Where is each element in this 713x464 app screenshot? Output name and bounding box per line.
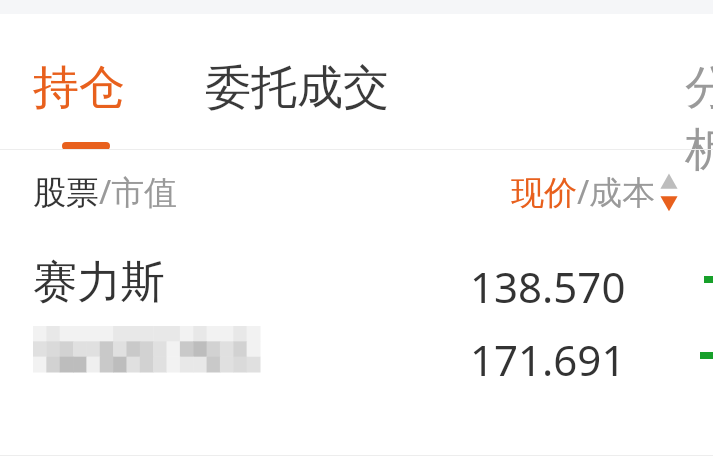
staticText: 赛力斯 — [33, 255, 165, 310]
button[interactable]: 委托成交 — [205, 14, 420, 149]
button[interactable]: 现价/成本 — [511, 169, 680, 214]
staticText: 股票/市值 — [33, 169, 178, 214]
other: Sort — [658, 171, 680, 213]
button[interactable]: 赛力斯 — [0, 233, 713, 453]
button[interactable]: 股票/市值 — [33, 169, 178, 214]
staticText: 持仓 — [33, 59, 125, 117]
button[interactable]: 分析 — [685, 14, 713, 149]
staticText: 分析 — [685, 59, 713, 179]
staticText: 现价/成本 — [511, 169, 656, 214]
staticText: 171.691 — [470, 331, 626, 388]
button[interactable]: 持仓 — [33, 14, 133, 149]
staticText: 委托成交 — [205, 59, 389, 117]
staticText: 138.570 — [470, 258, 626, 315]
